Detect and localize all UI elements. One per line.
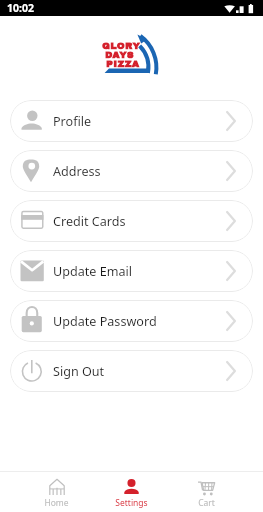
button[interactable]: Home [19, 472, 94, 512]
staticText: Address [53, 163, 101, 180]
staticText: Profile [53, 113, 92, 130]
button[interactable]: Address [10, 150, 253, 192]
staticText: DAYS [105, 50, 134, 60]
staticText: Sign Out [53, 363, 105, 380]
button[interactable]: Cart [169, 472, 244, 512]
button[interactable]: Update Password [10, 300, 253, 342]
button[interactable]: Sign Out [10, 350, 253, 392]
button[interactable]: Settings [94, 472, 169, 512]
button[interactable]: Profile [10, 100, 253, 142]
button[interactable]: Credit Cards [10, 200, 253, 242]
staticText: Update Password [53, 313, 157, 330]
staticText: Home [44, 497, 69, 509]
staticText: 10:02 [7, 1, 34, 15]
staticText: Credit Cards [53, 213, 126, 230]
staticText: Settings [115, 497, 148, 509]
button[interactable]: Update Email [10, 250, 253, 292]
staticText: PIZZA [106, 59, 140, 69]
staticText: Update Email [53, 263, 133, 280]
staticText: Cart [198, 497, 215, 509]
staticText: GLORY [102, 41, 141, 51]
